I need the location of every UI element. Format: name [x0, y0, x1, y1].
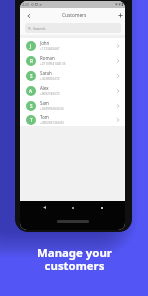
staticText: J [30, 43, 32, 49]
staticText: Sarah [40, 70, 52, 76]
button[interactable]: Home [68, 203, 77, 212]
button[interactable]: Recents [97, 203, 106, 212]
staticText: Search [33, 26, 46, 31]
staticText: 4:20 [22, 2, 30, 7]
staticText: Customers [62, 12, 87, 19]
staticText: Alex [40, 85, 49, 91]
staticText: +8092746572 [40, 92, 60, 96]
staticText: Sam [40, 100, 49, 106]
staticText: John [40, 40, 50, 46]
button[interactable]: Search [25, 23, 121, 33]
staticText: +3949930634 02 [40, 107, 64, 111]
button[interactable]: J [20, 38, 125, 53]
staticText: +37109941400 35 [40, 62, 66, 66]
staticText: R [30, 58, 33, 64]
button[interactable]: A [20, 83, 125, 98]
staticText: Tom [40, 114, 49, 120]
button[interactable]: Back [24, 11, 33, 20]
button[interactable]: S [20, 98, 125, 113]
staticText: T [30, 117, 33, 123]
staticText: A [29, 88, 33, 94]
staticText: +3638056372 [40, 77, 60, 81]
staticText: Manage your customers [37, 245, 112, 273]
staticText: Roman [40, 55, 55, 61]
staticText: +1123445667 [40, 47, 60, 51]
button[interactable]: S [20, 68, 125, 83]
button[interactable]: T [20, 113, 125, 126]
button[interactable]: Back [40, 203, 49, 212]
staticText: S [30, 103, 33, 109]
staticText: S [30, 73, 33, 79]
staticText: +3802947264 83 [40, 121, 64, 125]
button[interactable]: R [20, 53, 125, 68]
button[interactable]: Add customer [116, 11, 125, 20]
